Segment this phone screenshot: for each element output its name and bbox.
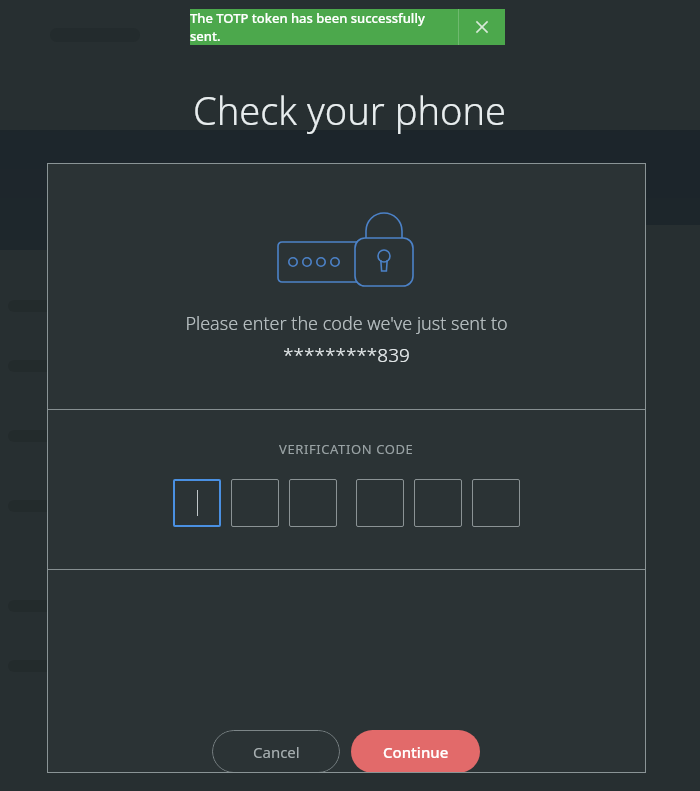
staticText: Continue — [383, 742, 449, 762]
button[interactable]: Continue — [351, 730, 480, 773]
button[interactable]: Verification digit 3 — [289, 479, 337, 527]
button[interactable]: Verification digit 1 — [173, 479, 221, 527]
staticText: The TOTP token has been successfully sen… — [190, 9, 458, 45]
button[interactable]: Verification digit 2 — [231, 479, 279, 527]
staticText: Please enter the code we've just sent to — [185, 311, 508, 336]
button[interactable]: Cancel — [212, 730, 340, 773]
button[interactable]: Verification digit 4 — [356, 479, 404, 527]
staticText: VERIFICATION CODE — [279, 440, 414, 458]
button[interactable]: Dismiss notification — [459, 9, 505, 45]
button[interactable]: Verification digit 6 — [472, 479, 520, 527]
staticText: Check your phone — [193, 84, 507, 136]
button[interactable]: Verification digit 5 — [414, 479, 462, 527]
staticText: *********839 — [283, 342, 410, 368]
staticText: Cancel — [253, 742, 300, 762]
